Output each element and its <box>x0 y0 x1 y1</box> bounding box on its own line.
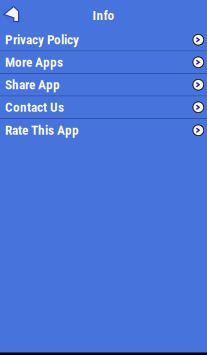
button[interactable]: More Apps <box>0 51 207 74</box>
button[interactable]: Privacy Policy <box>0 29 207 51</box>
staticText: Privacy Policy <box>5 32 79 47</box>
button[interactable]: Share App <box>0 74 207 96</box>
staticText: More Apps <box>5 54 63 70</box>
staticText: Share App <box>5 77 60 92</box>
staticText: Info <box>92 8 114 23</box>
staticText: Contact Us <box>5 99 64 115</box>
button[interactable]: Rate This App <box>0 119 207 141</box>
button[interactable]: Back <box>0 0 40 29</box>
staticText: Rate This App <box>5 122 79 138</box>
button[interactable]: Contact Us <box>0 96 207 119</box>
